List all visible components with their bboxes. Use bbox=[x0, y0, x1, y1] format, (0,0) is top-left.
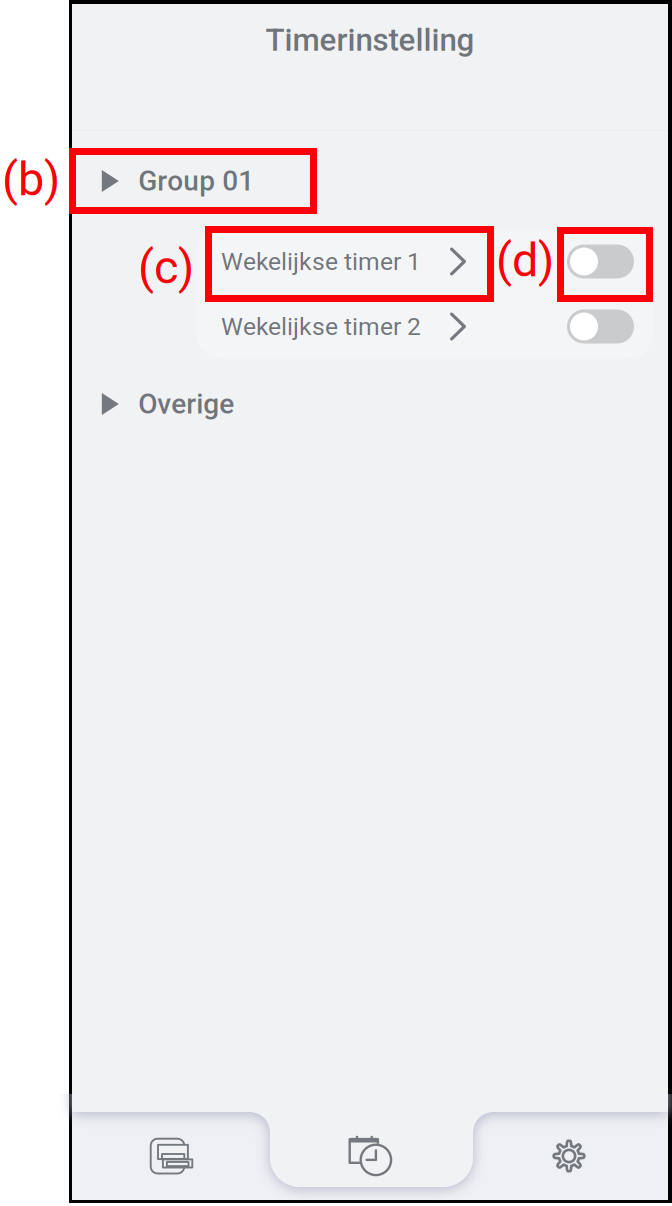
button[interactable]: Group 01 bbox=[72, 153, 668, 209]
button[interactable]: Devices bbox=[72, 1108, 270, 1204]
staticText: (b) bbox=[2, 152, 60, 207]
button[interactable]: Wekelijkse timer 2 bbox=[196, 294, 653, 359]
button[interactable]: Overige bbox=[72, 376, 668, 432]
staticText: Wekelijkse timer 1 bbox=[221, 247, 421, 276]
staticText: Timerinstelling bbox=[265, 22, 474, 58]
staticText: Overige bbox=[138, 388, 234, 420]
staticText: (d) bbox=[496, 233, 554, 288]
button[interactable]: Settings bbox=[470, 1108, 668, 1204]
staticText: Wekelijkse timer 2 bbox=[221, 312, 421, 341]
staticText: Group 01 bbox=[138, 165, 254, 197]
button[interactable]: Timer bbox=[270, 1108, 470, 1204]
button[interactable]: Wekelijkse timer 1 bbox=[196, 229, 653, 294]
staticText: (c) bbox=[138, 240, 194, 295]
